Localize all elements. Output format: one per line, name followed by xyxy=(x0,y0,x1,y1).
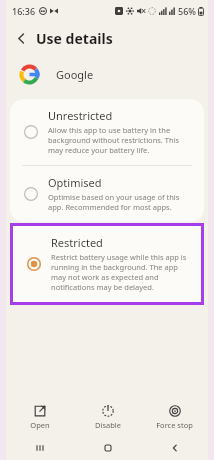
staticText: Optimise based on your usage of this app… xyxy=(48,192,192,212)
staticText: Disable xyxy=(95,420,121,430)
staticText: Allow this app to use battery in the bac… xyxy=(48,125,192,155)
staticText: Unrestricted xyxy=(48,108,113,123)
button[interactable]: Google xyxy=(6,54,208,94)
staticText: Use details xyxy=(36,29,113,48)
staticText: Google xyxy=(56,67,94,82)
staticText: Optimised xyxy=(48,175,102,190)
button[interactable]: Recents xyxy=(6,436,74,460)
button[interactable]: Disable xyxy=(74,398,141,436)
button[interactable]: Optimised xyxy=(10,166,204,222)
staticText: Restricted xyxy=(51,235,103,250)
staticText: Restrict battery usage while this app is… xyxy=(51,252,189,292)
button[interactable]: Unrestricted xyxy=(10,99,204,165)
staticText: Open xyxy=(30,420,50,430)
button[interactable]: Back xyxy=(141,436,208,460)
button[interactable]: Back xyxy=(6,23,36,53)
staticText: 56% xyxy=(178,5,196,17)
staticText: Force stop xyxy=(156,420,193,430)
button[interactable]: Home xyxy=(74,436,141,460)
staticText: 16:36 xyxy=(12,5,36,17)
button[interactable]: Force stop xyxy=(141,398,208,436)
button[interactable]: Restricted xyxy=(13,226,201,302)
button[interactable]: Open xyxy=(6,398,74,436)
